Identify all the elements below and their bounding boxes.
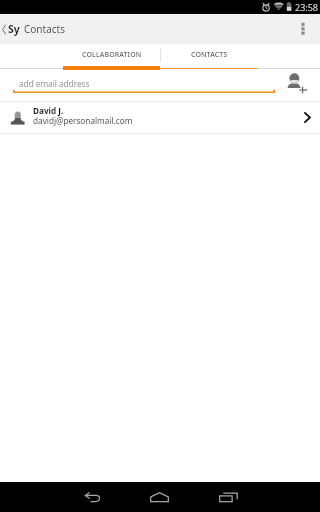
staticText: davidj@personalmail.com — [33, 115, 133, 126]
staticText: add email address — [19, 78, 90, 89]
button[interactable]: David J. — [0, 102, 320, 133]
button[interactable]: Home — [133, 482, 187, 512]
button[interactable]: CONTACTS — [160, 44, 258, 70]
button[interactable]: More options — [290, 14, 318, 44]
button[interactable]: Back — [66, 482, 120, 512]
button[interactable]: Sy — [0, 14, 69, 44]
staticText: 23:58 — [295, 1, 319, 13]
button[interactable]: Recent apps — [202, 482, 256, 512]
button[interactable]: COLLABORATION — [63, 44, 160, 70]
staticText: David J. — [33, 105, 64, 116]
staticText: COLLABORATION — [82, 50, 142, 60]
staticText: CONTACTS — [191, 50, 228, 60]
staticText: Contacts — [24, 22, 65, 36]
staticText: Sy — [8, 22, 20, 36]
button[interactable]: Add contact — [285, 70, 311, 97]
